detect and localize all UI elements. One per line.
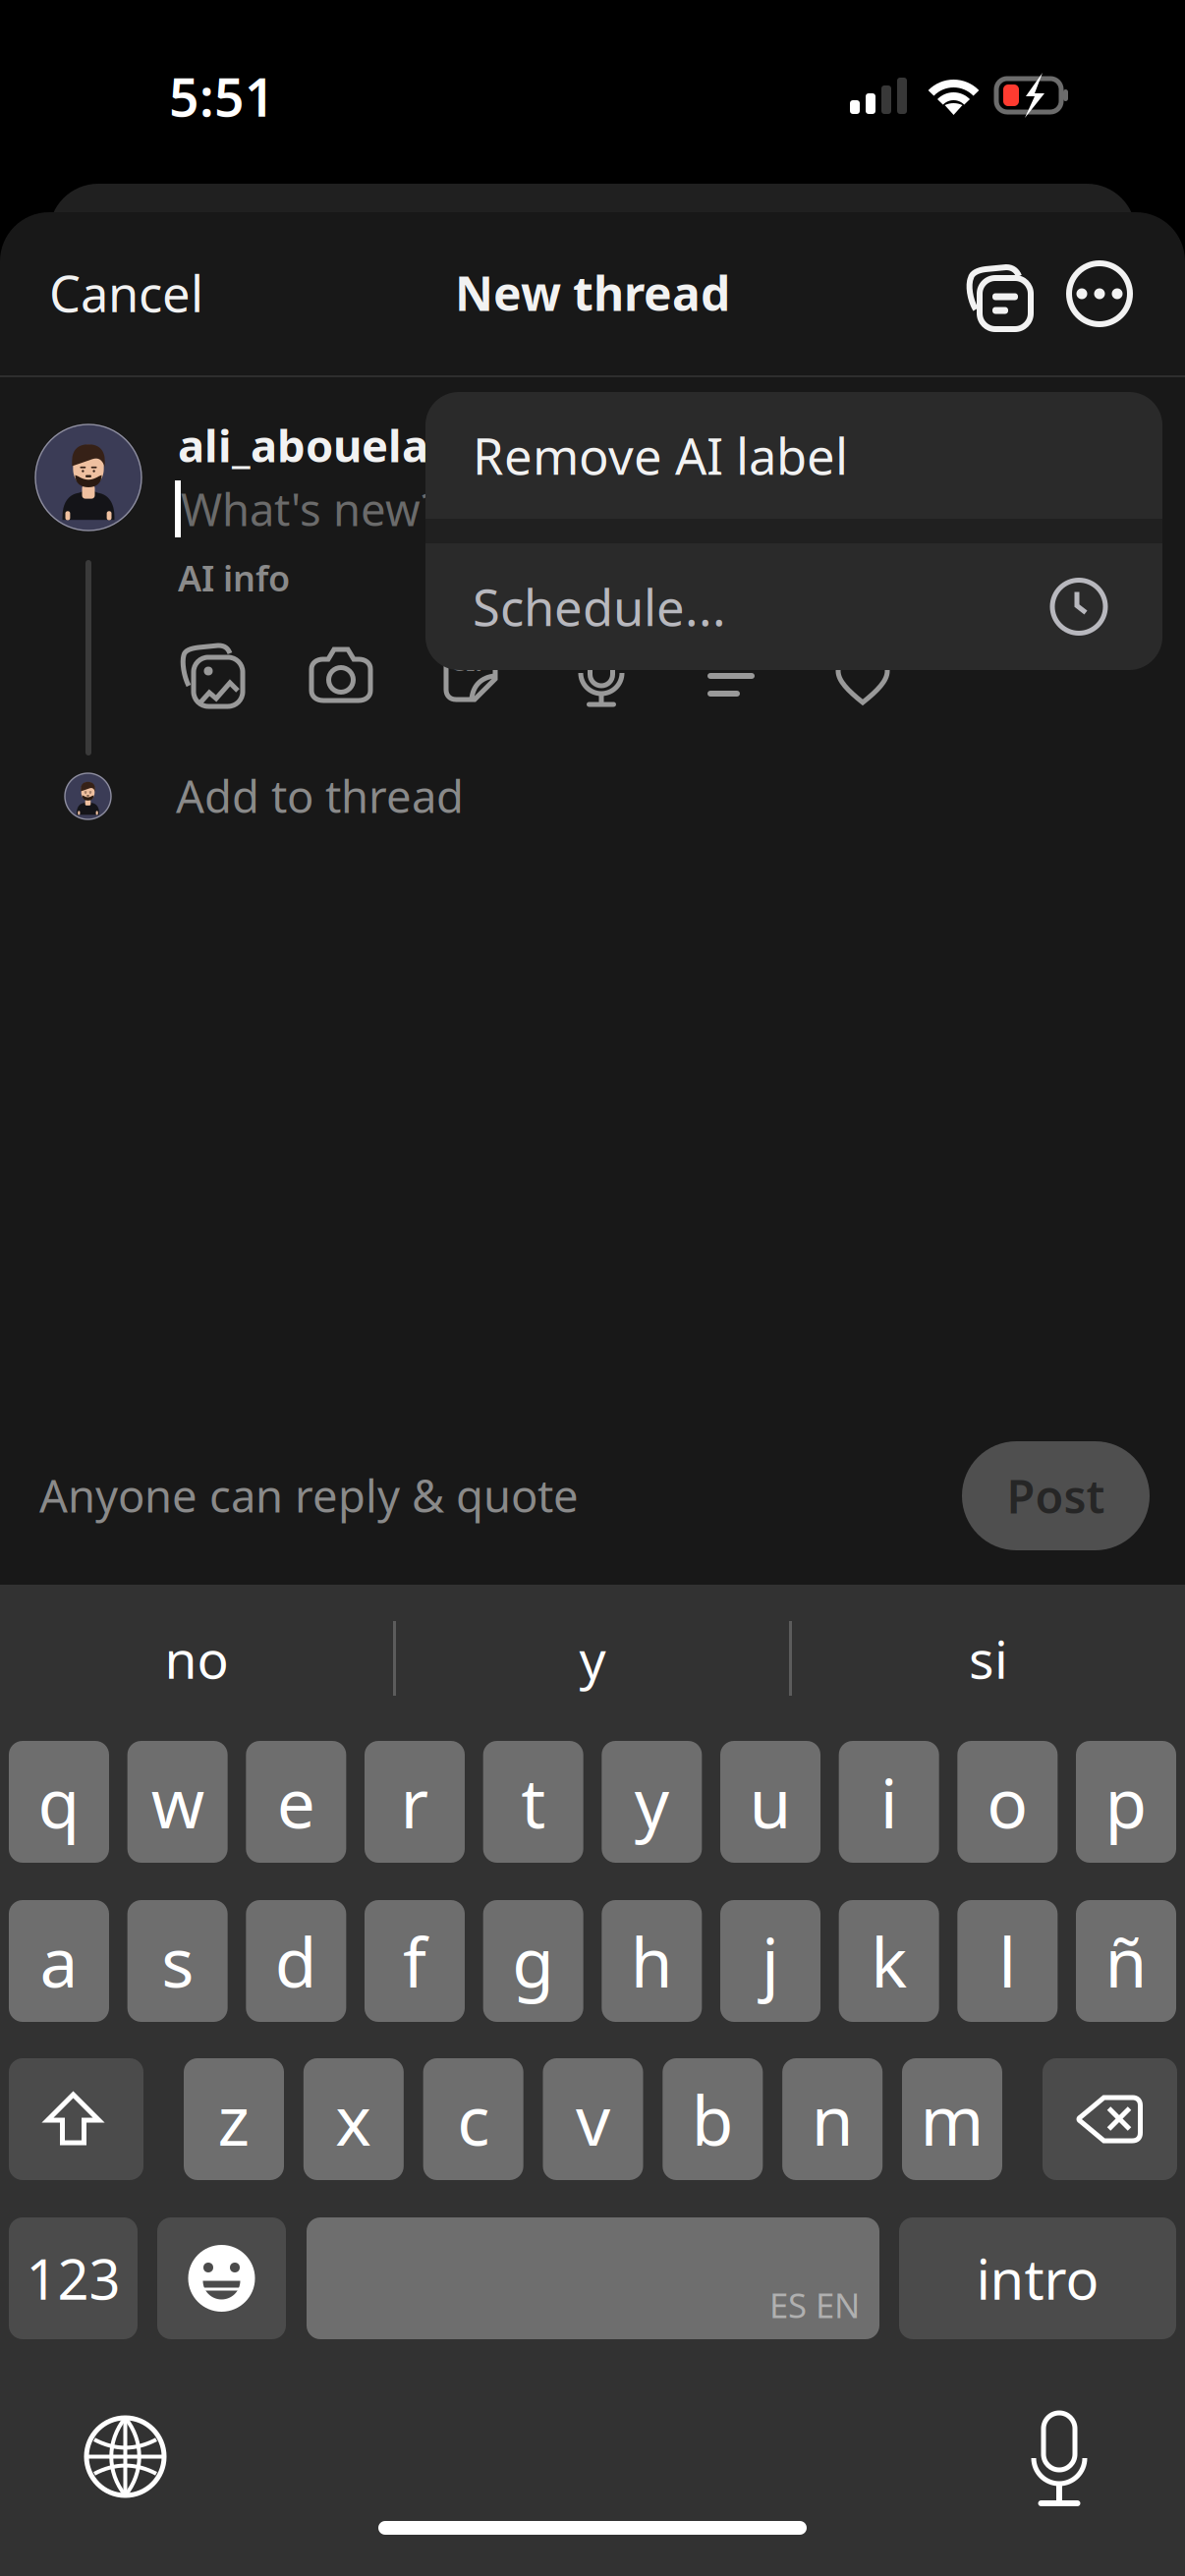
staticText: ES EN <box>769 2282 860 2327</box>
button[interactable]: Delete <box>1043 2058 1177 2180</box>
staticText: t <box>521 1757 546 1847</box>
staticText: q <box>38 1757 80 1847</box>
staticText: intro <box>976 2242 1099 2315</box>
button[interactable]: x <box>303 2058 404 2180</box>
button[interactable]: Space <box>307 2217 879 2339</box>
staticText: 123 <box>26 2242 120 2315</box>
staticText: k <box>871 1916 907 2006</box>
staticText: y <box>635 1757 669 1847</box>
staticText: c <box>457 2074 490 2164</box>
button[interactable]: y <box>602 1741 702 1863</box>
staticText: l <box>999 1916 1016 2006</box>
button[interactable]: p <box>1076 1741 1176 1863</box>
button[interactable]: c <box>423 2058 523 2180</box>
staticText: y <box>579 1624 606 1693</box>
staticText: Remove AI label <box>473 422 848 488</box>
button[interactable]: intro <box>899 2217 1176 2339</box>
staticText: 5:51 <box>169 62 275 131</box>
button[interactable]: Remove AI label <box>425 392 1162 519</box>
staticText: u <box>749 1757 791 1847</box>
staticText: no <box>165 1624 228 1693</box>
staticText: New thread <box>455 261 730 324</box>
button[interactable]: More options <box>1067 259 1132 328</box>
button[interactable]: Post <box>962 1441 1150 1550</box>
staticText: f <box>403 1916 426 2006</box>
button[interactable]: Cancel <box>16 241 330 345</box>
button[interactable]: Drafts <box>965 262 1034 331</box>
button[interactable]: si <box>792 1604 1185 1712</box>
button[interactable]: Dictate <box>1030 2409 1089 2511</box>
button[interactable]: t <box>483 1741 583 1863</box>
button[interactable]: k <box>839 1900 939 2022</box>
staticText: ali_abouelatta <box>178 415 494 475</box>
staticText: n <box>811 2074 854 2164</box>
button[interactable]: b <box>663 2058 763 2180</box>
button[interactable]: Camera <box>309 643 373 707</box>
button[interactable]: g <box>483 1900 583 2022</box>
button[interactable]: l <box>957 1900 1058 2022</box>
staticText: a <box>40 1916 78 2006</box>
staticText: Anyone can reply & quote <box>39 1466 579 1525</box>
staticText: x <box>335 2074 372 2164</box>
staticText: si <box>969 1624 1008 1693</box>
button[interactable]: Next keyboard <box>85 2417 165 2496</box>
staticText: d <box>275 1916 317 2006</box>
staticText: Schedule... <box>473 574 726 640</box>
button[interactable]: w <box>127 1741 228 1863</box>
staticText: w <box>151 1757 204 1847</box>
button[interactable]: q <box>9 1741 109 1863</box>
staticText: i <box>880 1757 898 1847</box>
staticText: e <box>277 1757 315 1847</box>
button[interactable]: Shift <box>9 2058 143 2180</box>
button[interactable]: o <box>957 1741 1058 1863</box>
staticText: v <box>576 2074 610 2164</box>
button[interactable]: v <box>543 2058 643 2180</box>
button[interactable]: Anyone can reply & quote <box>39 1467 727 1524</box>
staticText: m <box>920 2074 984 2164</box>
button[interactable]: ñ <box>1076 1900 1176 2022</box>
button[interactable]: 123 <box>9 2217 138 2339</box>
staticText: ñ <box>1105 1916 1147 2006</box>
button[interactable]: Photos <box>181 643 246 707</box>
button[interactable]: j <box>720 1900 820 2022</box>
button[interactable]: Voice <box>569 643 634 707</box>
button[interactable]: f <box>365 1900 465 2022</box>
staticText: What's new? <box>181 479 441 538</box>
button[interactable]: Schedule... <box>425 543 1162 670</box>
button[interactable]: i <box>839 1741 939 1863</box>
button[interactable]: h <box>602 1900 702 2022</box>
staticText: Add to thread <box>176 766 464 825</box>
staticText: p <box>1105 1757 1147 1847</box>
button[interactable]: r <box>365 1741 465 1863</box>
button[interactable]: z <box>184 2058 284 2180</box>
staticText: o <box>987 1757 1028 1847</box>
staticText: GIF <box>451 647 487 677</box>
button[interactable]: a <box>9 1900 109 2022</box>
staticText: j <box>762 1916 779 2006</box>
button[interactable]: n <box>782 2058 883 2180</box>
button[interactable]: Location <box>830 643 895 707</box>
button[interactable]: d <box>246 1900 346 2022</box>
staticText: r <box>400 1757 429 1847</box>
button[interactable]: y <box>396 1604 789 1712</box>
staticText: s <box>161 1916 194 2006</box>
button[interactable]: Poll <box>707 643 772 707</box>
button[interactable]: u <box>720 1741 820 1863</box>
staticText: Cancel <box>49 260 203 326</box>
button[interactable]: GIF <box>438 643 503 707</box>
staticText: AI info <box>178 554 290 601</box>
button[interactable]: no <box>0 1604 393 1712</box>
button[interactable]: m <box>902 2058 1002 2180</box>
staticText: b <box>692 2074 734 2164</box>
staticText: h <box>631 1916 673 2006</box>
button[interactable]: e <box>246 1741 346 1863</box>
staticText: Post <box>1007 1465 1105 1526</box>
button[interactable]: s <box>127 1900 228 2022</box>
button[interactable]: Add to thread <box>176 768 864 823</box>
staticText: g <box>512 1916 554 2006</box>
staticText: z <box>218 2074 250 2164</box>
button[interactable]: Emoji <box>157 2217 286 2339</box>
